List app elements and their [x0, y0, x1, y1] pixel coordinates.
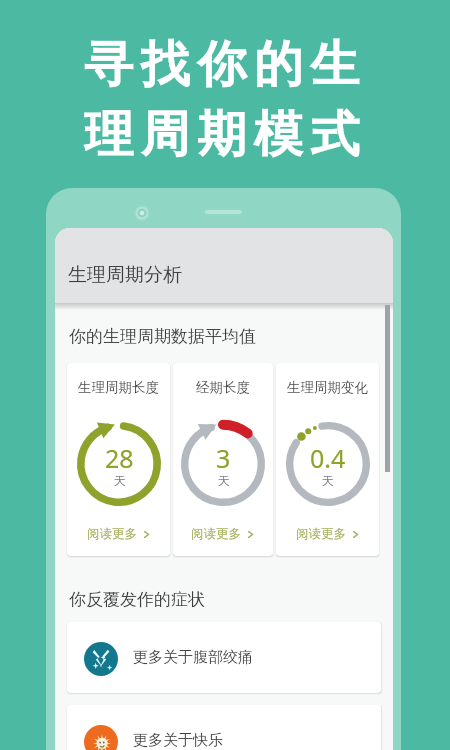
staticText: 生理周期长度: [78, 379, 159, 396]
staticText: 天: [218, 473, 230, 488]
staticText: 更多关于快乐: [133, 731, 223, 750]
button[interactable]: 生理周期长度: [67, 363, 170, 556]
button[interactable]: 经期长度: [173, 363, 273, 556]
staticText: 28: [105, 441, 134, 475]
staticText: 阅读更多: [87, 526, 137, 542]
button[interactable]: 生理周期变化: [276, 363, 379, 556]
staticText: 0.4: [310, 441, 346, 475]
staticText: 寻找你的生: [84, 34, 367, 96]
staticText: 理周期模式: [84, 104, 367, 166]
staticText: 你的生理周期数据平均值: [69, 326, 256, 347]
button[interactable]: 更多关于腹部绞痛: [67, 622, 381, 693]
staticText: 天: [322, 473, 334, 488]
staticText: 阅读更多: [296, 526, 346, 542]
staticText: 生理周期变化: [287, 379, 368, 396]
staticText: 天: [114, 473, 126, 488]
staticText: 更多关于腹部绞痛: [133, 648, 253, 667]
staticText: 经期长度: [196, 379, 250, 396]
staticText: 阅读更多: [191, 526, 241, 542]
staticText: 3: [216, 441, 231, 475]
button[interactable]: 更多关于快乐: [67, 705, 381, 750]
staticText: 生理周期分析: [68, 263, 182, 287]
staticText: 你反覆发作的症状: [69, 589, 205, 610]
